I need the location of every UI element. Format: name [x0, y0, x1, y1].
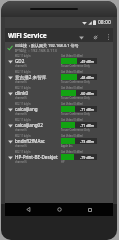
- button[interactable]: Home: [53, 203, 66, 216]
- button[interactable]: Wi-Fi scan: [77, 33, 85, 41]
- staticText: To use Conference Only (0.25): [61, 80, 97, 84]
- button[interactable]: 802.11 b/g/n: [5, 69, 113, 85]
- staticText: Apple Inc.: [61, 144, 74, 148]
- staticText: To use Conference Only (0.25): [61, 128, 97, 132]
- staticText: GD2: [15, 58, 25, 64]
- staticText: -73 dBm: [80, 139, 95, 144]
- staticText: Get Video (0 dBm): [61, 150, 83, 154]
- staticText: 意吉播2 来智库: [15, 74, 47, 80]
- button[interactable]: 802.11 b/g/n: [5, 101, 113, 117]
- button[interactable]: More options: [104, 33, 112, 41]
- staticText: -79 dBm: [80, 155, 95, 160]
- staticText: caicaijiang02: [15, 122, 43, 128]
- staticText: To use Conference Only (0.25): [61, 112, 97, 116]
- staticText: Get Video (0 dBm): [61, 102, 83, 106]
- staticText: 802.11 b/g/n: [15, 86, 31, 90]
- staticText: channel 6: [15, 80, 27, 84]
- staticText: IP地址：192.168.0.113: [15, 48, 57, 53]
- staticText: 08:00: [98, 19, 111, 26]
- button[interactable]: 802.11 b/g/n: [5, 117, 113, 133]
- staticText: Get Video (0 dBm): [61, 70, 83, 74]
- button[interactable]: 802.11 b/g/n: [5, 53, 113, 69]
- staticText: -60 dBm: [80, 91, 95, 96]
- staticText: channel 6: [15, 160, 27, 164]
- staticText: Get Video (0 dBm): [61, 134, 83, 138]
- staticText: channel 6: [15, 64, 27, 68]
- staticText: WiFi Service: [8, 31, 47, 40]
- button[interactable]: 802.11 b/g/n: [5, 133, 113, 149]
- button[interactable]: Back: [22, 203, 35, 216]
- staticText: 802.11 b/g/n: [15, 118, 31, 122]
- staticText: -48 dBm: [80, 75, 95, 80]
- staticText: 已连接：默认网关 192.168.0.1 信号: [15, 43, 79, 48]
- staticText: Get Video (0 dBm): [61, 54, 83, 58]
- staticText: 802.11 b/g/n: [15, 54, 31, 58]
- staticText: dlink0: [15, 90, 29, 96]
- button[interactable]: 802.11 b/g/n: [5, 149, 113, 165]
- staticText: -49 dBm: [80, 59, 95, 64]
- staticText: channel 6: [15, 144, 27, 148]
- button[interactable]: Recent apps: [83, 203, 96, 216]
- staticText: channel 6: [15, 112, 27, 116]
- staticText: 802.11 b/g/n: [15, 102, 31, 106]
- staticText: 802.11 b/g/n: [15, 134, 31, 138]
- staticText: bndnfl2fMAsc: [15, 138, 45, 144]
- staticText: channel 6: [15, 128, 27, 132]
- staticText: To use Conference Only (0.25): [61, 64, 97, 68]
- staticText: Get Video (0 dBm): [61, 86, 83, 90]
- staticText: HP-Print-BE-Deskjet: [15, 154, 58, 160]
- staticText: -71 dBm: [80, 123, 95, 128]
- staticText: HP: [61, 160, 65, 164]
- button[interactable]: Settings: [91, 33, 99, 41]
- button[interactable]: 802.11 b/g/n: [5, 85, 113, 101]
- staticText: -71 dBm: [80, 107, 95, 112]
- staticText: Get Video (0 dBm): [61, 118, 83, 122]
- staticText: 802.11 b/g/n: [15, 70, 31, 74]
- staticText: 802.11 b/g/n: [15, 150, 31, 154]
- staticText: channel 6: [15, 96, 27, 100]
- staticText: caicaijiang: [15, 106, 38, 112]
- staticText: To use Conference Only (0.25): [61, 96, 97, 100]
